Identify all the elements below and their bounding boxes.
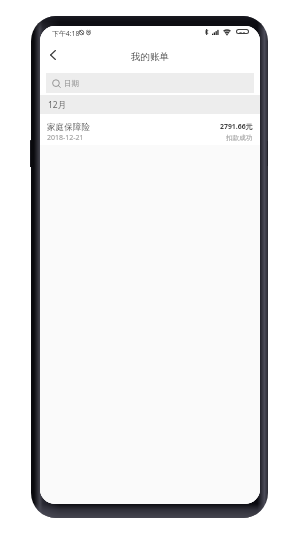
staticText: 12月 <box>48 99 67 111</box>
staticText: 下午4:18 <box>52 29 80 38</box>
button[interactable]: Back <box>45 46 61 64</box>
button[interactable]: 家庭保障险 <box>40 114 260 145</box>
staticText: 96 <box>239 30 246 33</box>
staticText: 扣款成功 <box>226 134 253 142</box>
staticText: 2791.66元 <box>220 122 253 131</box>
staticText: 2018-12-21 <box>47 133 84 143</box>
staticText: 家庭保障险 <box>47 122 90 133</box>
button[interactable]: 日期 <box>46 73 254 93</box>
staticText: 我的账单 <box>131 51 169 63</box>
staticText: 日期 <box>64 79 79 88</box>
